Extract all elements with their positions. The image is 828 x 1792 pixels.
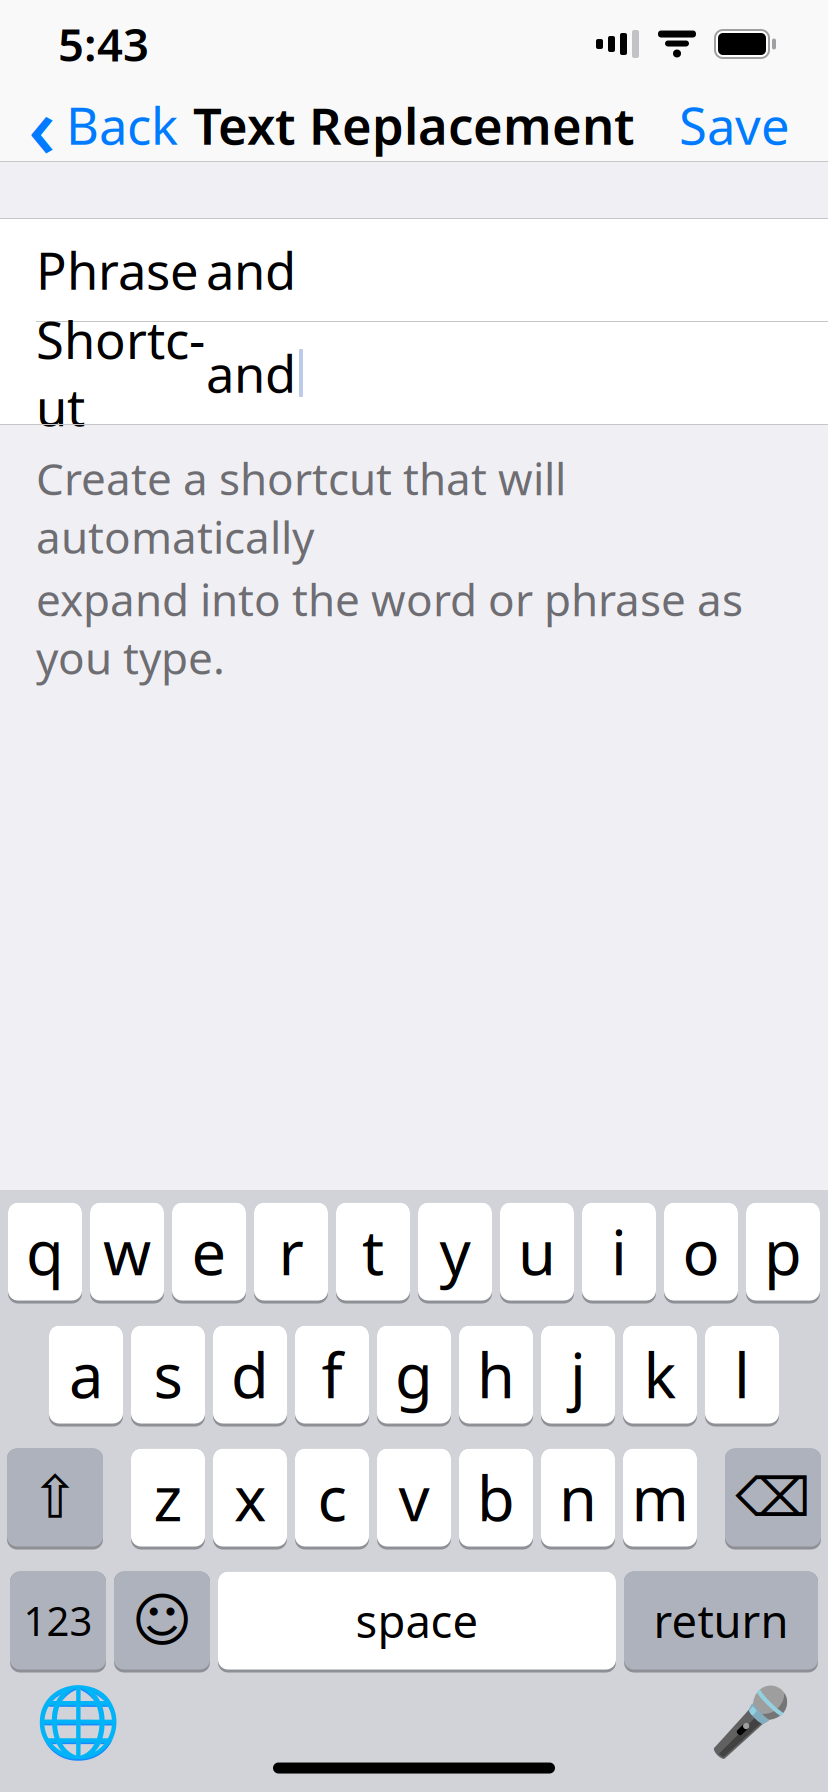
button[interactable]: z [131, 1448, 205, 1549]
button[interactable]: Emoji [114, 1571, 210, 1672]
staticText: j [570, 1334, 586, 1415]
button[interactable]: ‹ [0, 60, 178, 190]
staticText: s [153, 1334, 182, 1415]
staticText: c [317, 1457, 346, 1538]
staticText: ⇧ [30, 1464, 79, 1531]
staticText: 5:43 [58, 14, 149, 74]
button[interactable]: w [90, 1202, 164, 1303]
button[interactable]: Phrase [0, 219, 828, 321]
button[interactable]: g [377, 1325, 451, 1426]
staticText: Save [679, 91, 790, 159]
button[interactable]: c [295, 1448, 369, 1549]
button[interactable]: Next keyboard [30, 1682, 126, 1762]
staticText: m [631, 1457, 688, 1538]
staticText: Back [66, 91, 178, 159]
staticText: ‹ [28, 68, 56, 182]
staticText: n [559, 1457, 597, 1538]
button[interactable]: m [623, 1448, 697, 1549]
staticText: u [518, 1211, 556, 1292]
staticText: q [26, 1211, 64, 1292]
staticText: 123 [23, 1594, 92, 1647]
button[interactable]: Shift [7, 1448, 103, 1549]
button[interactable]: Shortcut [0, 322, 828, 424]
staticText: g [395, 1334, 433, 1415]
staticText: 🎤 [708, 1684, 791, 1761]
button[interactable]: Delete [725, 1448, 821, 1549]
button[interactable]: k [623, 1325, 697, 1426]
button[interactable]: Return [624, 1571, 818, 1672]
button[interactable]: Save [679, 83, 828, 167]
button[interactable]: l [705, 1325, 779, 1426]
staticText: p [764, 1211, 802, 1292]
button[interactable]: y [418, 1202, 492, 1303]
button[interactable]: x [213, 1448, 287, 1549]
staticText: Phrase [36, 236, 199, 304]
button[interactable]: o [664, 1202, 738, 1303]
button[interactable]: h [459, 1325, 533, 1426]
staticText: Create a shortcut that will automaticall… [36, 449, 566, 566]
staticText: i [611, 1211, 627, 1292]
staticText: f [321, 1334, 342, 1415]
button[interactable]: n [541, 1448, 615, 1549]
staticText: expand into the word or phrase as you ty… [36, 570, 743, 687]
button[interactable]: j [541, 1325, 615, 1426]
button[interactable]: i [582, 1202, 656, 1303]
staticText: and [206, 339, 296, 407]
staticText: w [103, 1211, 151, 1292]
staticText: Shortcut [36, 306, 205, 440]
button[interactable]: e [172, 1202, 246, 1303]
button[interactable]: r [254, 1202, 328, 1303]
button[interactable]: q [8, 1202, 82, 1303]
button[interactable]: Space [218, 1571, 616, 1672]
staticText: v [398, 1457, 429, 1538]
staticText: space [355, 1590, 478, 1651]
button[interactable]: Numbers [10, 1571, 106, 1672]
button[interactable]: a [49, 1325, 123, 1426]
button[interactable]: u [500, 1202, 574, 1303]
button[interactable]: d [213, 1325, 287, 1426]
button[interactable]: b [459, 1448, 533, 1549]
staticText: ⌫ [735, 1467, 810, 1528]
staticText: e [191, 1211, 226, 1292]
staticText: a [69, 1334, 103, 1415]
staticText: 🌐 [35, 1683, 121, 1762]
staticText: return [653, 1590, 788, 1651]
staticText: y [439, 1211, 470, 1292]
staticText: ☺ [131, 1587, 192, 1654]
staticText: d [231, 1334, 269, 1415]
button[interactable]: Dictation [702, 1682, 798, 1762]
button[interactable]: v [377, 1448, 451, 1549]
staticText: x [234, 1457, 266, 1538]
button[interactable]: t [336, 1202, 410, 1303]
staticText: o [682, 1211, 719, 1292]
button[interactable]: p [746, 1202, 820, 1303]
staticText: h [477, 1334, 515, 1415]
staticText: t [362, 1211, 384, 1292]
button[interactable]: s [131, 1325, 205, 1426]
staticText: l [734, 1334, 750, 1415]
staticText: z [153, 1457, 182, 1538]
staticText: and [206, 236, 296, 304]
staticText: b [477, 1457, 515, 1538]
button[interactable]: f [295, 1325, 369, 1426]
staticText: r [278, 1211, 303, 1292]
staticText: Text Replacement [193, 91, 635, 159]
staticText: k [643, 1334, 676, 1415]
